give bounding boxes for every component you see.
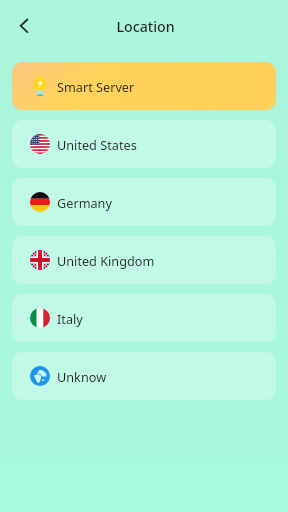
button[interactable]: Germany xyxy=(12,178,276,226)
staticText: Unknow xyxy=(57,368,107,385)
button[interactable]: Back xyxy=(9,10,39,40)
staticText: Germany xyxy=(57,194,112,211)
staticText: United States xyxy=(57,136,137,153)
button[interactable]: Unknow xyxy=(12,352,276,400)
button[interactable]: Smart Server xyxy=(12,62,276,110)
staticText: United Kingdom xyxy=(57,252,155,269)
button[interactable]: United Kingdom xyxy=(12,236,276,284)
button[interactable]: Italy xyxy=(12,294,276,342)
button[interactable]: United States xyxy=(12,120,276,168)
staticText: Location xyxy=(116,17,175,36)
staticText: Italy xyxy=(57,310,83,327)
staticText: Smart Server xyxy=(57,78,135,95)
